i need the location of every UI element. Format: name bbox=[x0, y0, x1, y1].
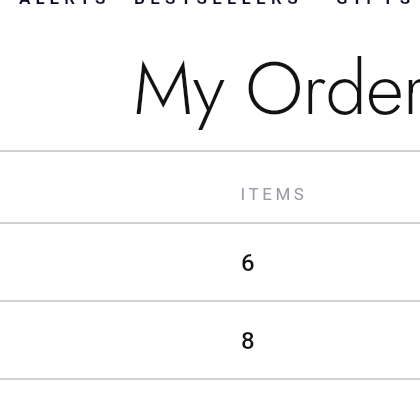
staticText: ALERTS bbox=[19, 0, 111, 8]
button[interactable]: 6 bbox=[0, 224, 420, 300]
staticText: My Orders bbox=[133, 35, 420, 142]
staticText: ITEMS bbox=[240, 184, 308, 204]
button[interactable]: BESTSELLERS bbox=[134, 0, 303, 8]
button[interactable]: GIFTS bbox=[336, 0, 417, 8]
staticText: BESTSELLERS bbox=[134, 0, 303, 8]
staticText: 8 bbox=[241, 327, 255, 355]
staticText: 6 bbox=[241, 249, 255, 277]
staticText: GIFTS bbox=[336, 0, 417, 8]
button[interactable]: ALERTS bbox=[19, 0, 111, 8]
button[interactable]: ITEMS bbox=[0, 152, 420, 222]
button[interactable]: 8 bbox=[0, 302, 420, 378]
